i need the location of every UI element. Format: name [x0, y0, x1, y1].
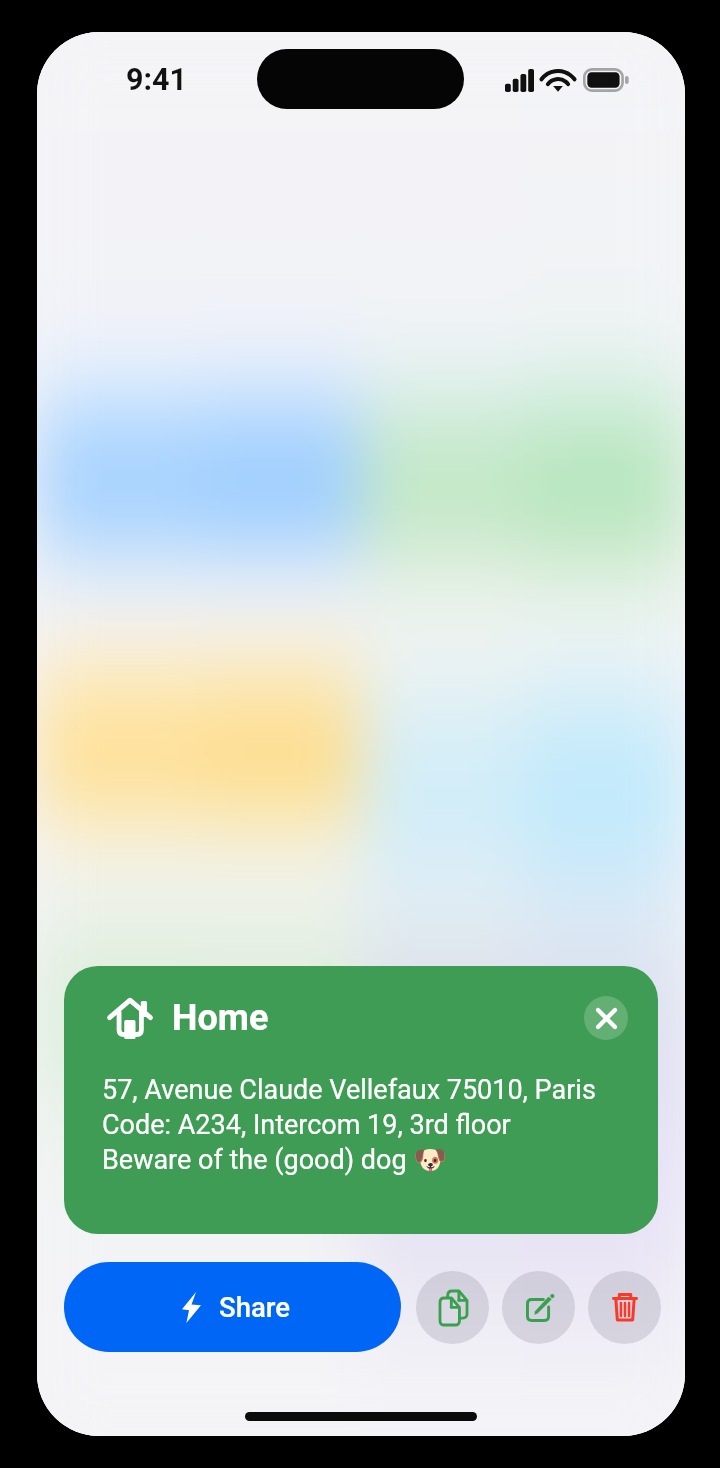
staticText: 9:41: [126, 62, 188, 98]
button[interactable]: Close: [584, 996, 628, 1040]
button[interactable]: Home: [64, 966, 658, 1234]
button[interactable]: Edit: [502, 1271, 575, 1344]
staticText: 57, Avenue Claude Vellefaux 75010, Paris…: [102, 1074, 596, 1175]
button[interactable]: Copy: [416, 1271, 489, 1344]
staticText: Home: [172, 997, 269, 1039]
button[interactable]: Share: [64, 1262, 401, 1352]
staticText: Share: [219, 1291, 290, 1323]
button[interactable]: Delete: [588, 1271, 661, 1344]
